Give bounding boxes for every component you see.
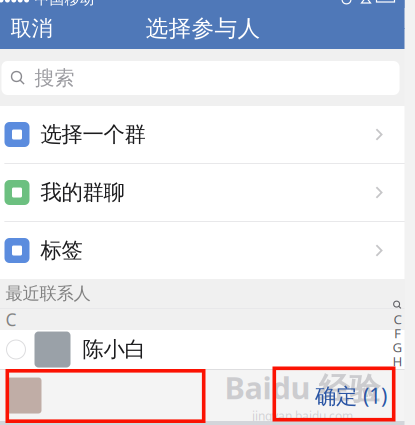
staticText: 标签 — [40, 237, 82, 264]
button[interactable]: 选择一个群 — [0, 106, 404, 163]
staticText: Baidu 经验 — [224, 367, 380, 408]
staticText: F — [394, 324, 401, 342]
staticText: H — [392, 352, 402, 370]
staticText: 陈小白 — [82, 336, 145, 363]
staticText: 取消 — [10, 15, 52, 42]
button[interactable]: 标签 — [0, 222, 404, 279]
button[interactable]: 确定 (1) — [297, 370, 404, 421]
staticText: 我的群聊 — [40, 179, 124, 206]
staticText: 最近联系人 — [5, 283, 90, 304]
staticText: 中国移动 — [34, 0, 94, 8]
staticText: C — [5, 308, 16, 331]
button[interactable]: 取消 — [0, 8, 64, 48]
staticText: 确定 (1) — [315, 381, 387, 410]
button[interactable]: 陈小白 — [0, 330, 404, 369]
staticText: 选择参与人 — [145, 15, 260, 42]
staticText: C — [393, 310, 401, 328]
staticText: jingyan.baidu.com — [252, 408, 353, 424]
staticText: 选择一个群 — [40, 121, 145, 148]
button[interactable]: 我的群聊 — [0, 164, 404, 221]
staticText: 搜索 — [34, 66, 74, 90]
staticText: G — [392, 338, 402, 356]
